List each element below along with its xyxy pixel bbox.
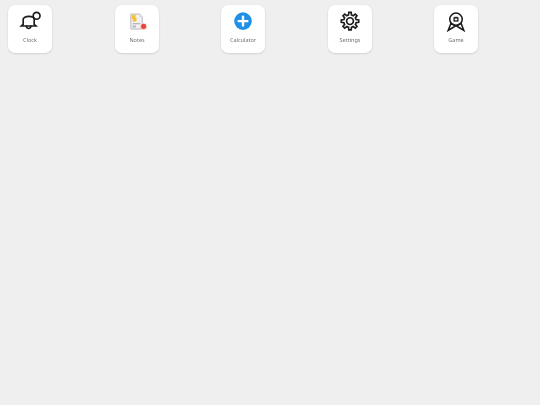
button[interactable]: Settings [328, 5, 372, 53]
other: Calculator [232, 11, 254, 33]
button[interactable]: Game [434, 5, 478, 53]
button[interactable]: Calculator [221, 5, 265, 53]
other: Settings [339, 11, 361, 33]
other: Game [445, 11, 467, 33]
staticText: Game [434, 36, 478, 43]
other: Clock [19, 11, 41, 33]
staticText: Clock [8, 36, 52, 43]
staticText: Settings [328, 36, 372, 43]
button[interactable]: Clock [8, 5, 52, 53]
button[interactable]: Notes [115, 5, 159, 53]
staticText: Calculator [221, 36, 265, 43]
other: Notes [126, 11, 148, 33]
staticText: Notes [115, 36, 159, 43]
